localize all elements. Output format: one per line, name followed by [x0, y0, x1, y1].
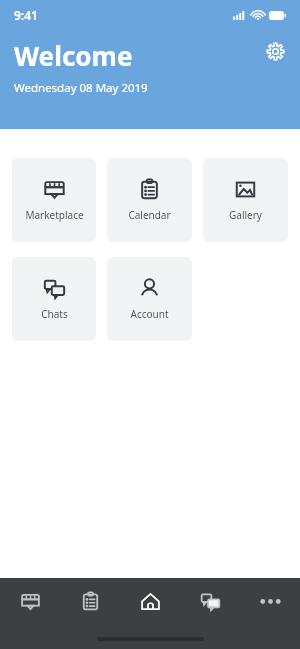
- button[interactable]: Chats: [180, 578, 240, 624]
- button[interactable]: Calendar: [107, 158, 192, 242]
- button[interactable]: More: [240, 578, 300, 624]
- staticText: Chats: [41, 307, 68, 321]
- button[interactable]: Gallery: [203, 158, 288, 242]
- button[interactable]: Marketplace: [12, 158, 96, 242]
- staticText: Gallery: [229, 208, 262, 222]
- staticText: Calendar: [128, 208, 171, 222]
- button[interactable]: Account: [107, 257, 192, 341]
- staticText: Marketplace: [25, 208, 84, 222]
- button[interactable]: Home: [120, 578, 180, 624]
- staticText: Wednesday 08 May 2019: [14, 80, 148, 96]
- button[interactable]: Calendar: [60, 578, 120, 624]
- staticText: Welcome: [14, 38, 133, 73]
- staticText: 9:41: [14, 7, 38, 23]
- button[interactable]: Settings: [258, 34, 292, 68]
- button[interactable]: Chats: [12, 257, 96, 341]
- staticText: Account: [130, 307, 169, 321]
- button[interactable]: Marketplace: [0, 578, 60, 624]
